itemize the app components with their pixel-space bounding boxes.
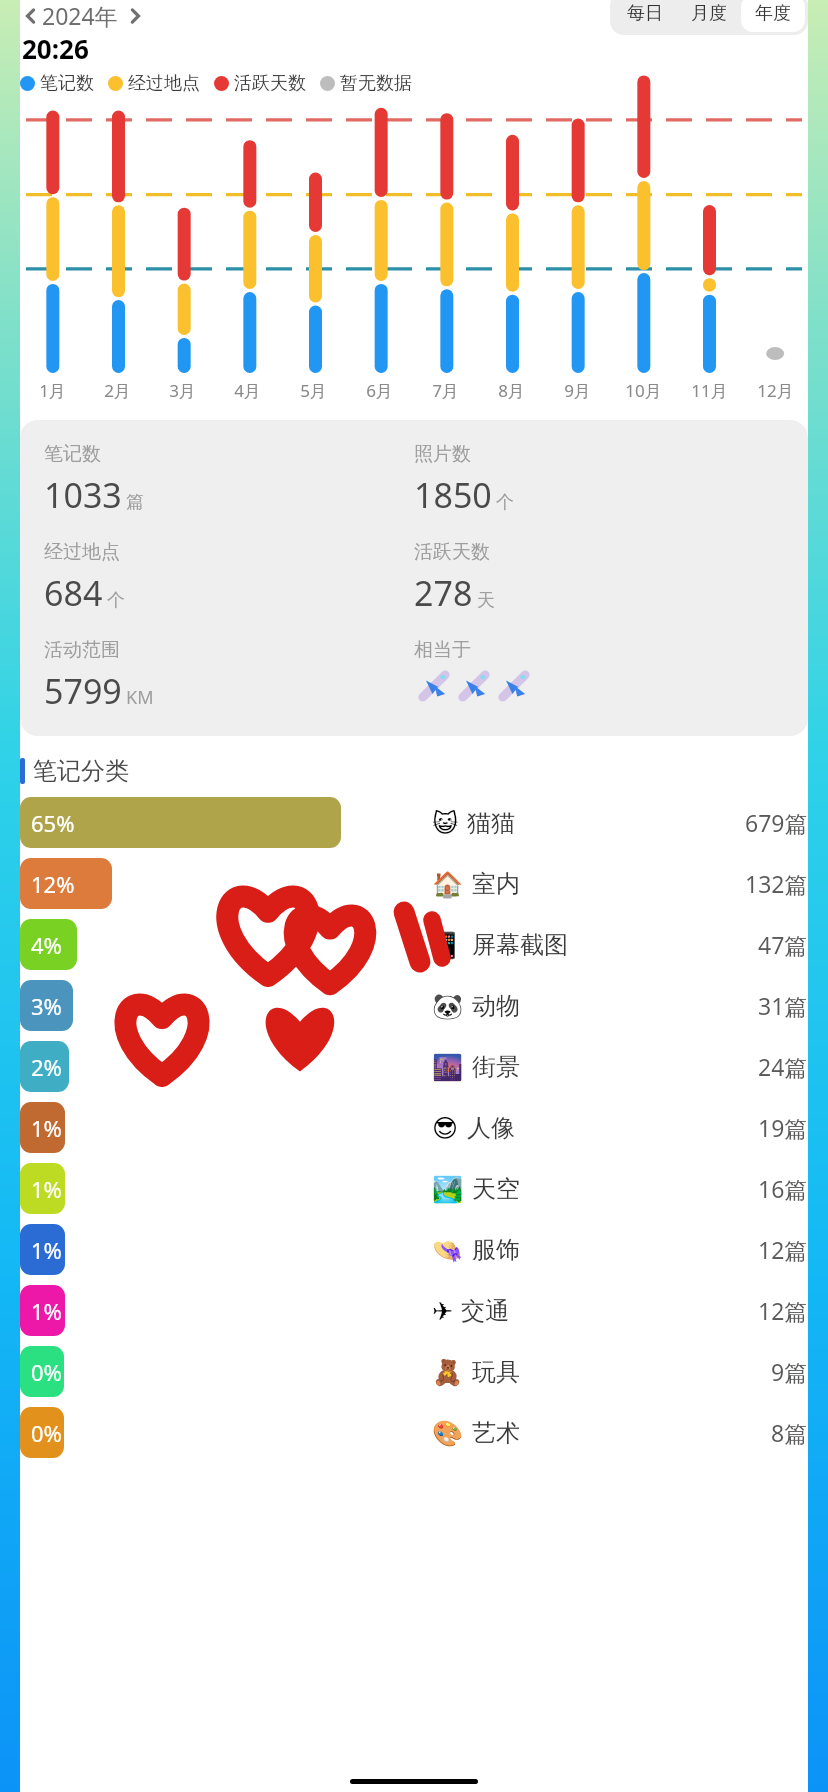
button[interactable]: 笔记数 — [20, 420, 808, 736]
staticText: 12月 — [757, 379, 794, 402]
staticText: 19篇 — [758, 1112, 808, 1143]
button[interactable]: 1% — [20, 1158, 808, 1219]
staticText: 12篇 — [758, 1234, 808, 1265]
staticText: 📱 — [432, 931, 464, 960]
staticText: 2024年 — [42, 0, 118, 31]
staticText: 6月 — [366, 379, 393, 402]
staticText: 11月 — [691, 379, 728, 402]
staticText: ✈ — [432, 1297, 453, 1326]
button[interactable]: 4% — [20, 914, 808, 975]
staticText: KM — [126, 685, 154, 710]
staticText: 5月 — [300, 379, 327, 402]
staticText: 10月 — [625, 379, 662, 402]
staticText: 1% — [31, 1174, 62, 1204]
staticText: 笔记数 — [40, 72, 94, 95]
staticText: 132篇 — [745, 868, 808, 899]
staticText: 278 — [414, 570, 473, 616]
button[interactable]: 月度 — [677, 0, 741, 32]
button[interactable]: 2% — [20, 1036, 808, 1097]
staticText: 猫猫 — [467, 808, 515, 838]
staticText: 天 — [477, 589, 495, 612]
staticText: 😎 — [432, 1114, 459, 1143]
staticText: 16篇 — [758, 1173, 808, 1204]
staticText: 相当于 — [414, 638, 471, 662]
staticText: 7月 — [432, 379, 459, 402]
button[interactable]: 0% — [20, 1341, 808, 1402]
staticText: 2% — [31, 1052, 62, 1082]
staticText: 服饰 — [472, 1235, 520, 1265]
staticText: 31篇 — [758, 990, 808, 1021]
staticText: 街景 — [472, 1052, 520, 1082]
staticText: 经过地点 — [128, 72, 200, 95]
staticText: 9月 — [564, 379, 591, 402]
staticText: 0% — [31, 1418, 62, 1448]
staticText: 🏠 — [432, 870, 464, 899]
staticText: 活跃天数 — [234, 72, 306, 95]
staticText: 屏幕截图 — [472, 930, 568, 960]
staticText: 经过地点 — [44, 540, 120, 564]
staticText: 1月 — [39, 379, 66, 402]
staticText: 月度 — [691, 2, 727, 25]
button[interactable]: 1% — [20, 1219, 808, 1280]
staticText: 艺术 — [472, 1418, 520, 1448]
staticText: 1% — [31, 1113, 62, 1143]
staticText: 1033 — [44, 472, 122, 518]
button[interactable]: 1% — [20, 1280, 808, 1341]
staticText: 👒 — [432, 1236, 464, 1265]
staticText: 🏞 — [432, 1175, 464, 1204]
staticText: 2月 — [104, 379, 131, 402]
staticText: 3% — [31, 991, 62, 1021]
staticText: 🧸 — [432, 1358, 464, 1387]
staticText: 47篇 — [758, 929, 808, 960]
staticText: 个 — [107, 589, 125, 612]
staticText: 1% — [31, 1235, 62, 1265]
staticText: 🐼 — [432, 992, 464, 1021]
button[interactable]: 1% — [20, 1097, 808, 1158]
staticText: 笔记分类 — [33, 756, 129, 786]
staticText: 照片数 — [414, 442, 471, 466]
staticText: 4月 — [234, 379, 261, 402]
staticText: 3月 — [169, 379, 196, 402]
staticText: 9篇 — [771, 1356, 808, 1387]
staticText: 室内 — [472, 869, 520, 899]
button[interactable]: 3% — [20, 975, 808, 1036]
button[interactable]: 年度 — [741, 0, 805, 32]
staticText: 每日 — [627, 2, 663, 25]
staticText: 玩具 — [472, 1357, 520, 1387]
staticText: 4% — [31, 930, 62, 960]
staticText: 交通 — [461, 1296, 509, 1326]
button[interactable]: 上一年 — [20, 5, 42, 27]
button[interactable]: 下一年 — [124, 5, 146, 27]
staticText: 笔记数 — [44, 442, 101, 466]
staticText: 人像 — [467, 1113, 515, 1143]
staticText: 684 — [44, 570, 103, 616]
staticText: 活动范围 — [44, 638, 120, 662]
staticText: 65% — [31, 808, 75, 838]
staticText: 年度 — [755, 2, 791, 25]
staticText: 😺 — [432, 809, 459, 838]
staticText: 20:26 — [22, 31, 89, 64]
staticText: 8篇 — [771, 1417, 808, 1448]
staticText: 篇 — [126, 491, 144, 514]
staticText: 动物 — [472, 991, 520, 1021]
staticText: 8月 — [498, 379, 525, 402]
staticText: 天空 — [472, 1174, 520, 1204]
staticText: 12篇 — [758, 1295, 808, 1326]
button[interactable]: 0% — [20, 1402, 808, 1463]
staticText: 679篇 — [745, 807, 808, 838]
staticText: 1% — [31, 1296, 62, 1326]
button[interactable]: 12% — [20, 853, 808, 914]
button[interactable]: 65% — [20, 792, 808, 853]
staticText: 24篇 — [758, 1051, 808, 1082]
staticText: 🌆 — [432, 1053, 464, 1082]
staticText: 个 — [496, 491, 514, 514]
staticText: 1850 — [414, 472, 492, 518]
staticText: 暂无数据 — [340, 72, 412, 95]
staticText: 🎨 — [432, 1419, 464, 1448]
staticText: 0% — [31, 1357, 62, 1387]
staticText: 12% — [31, 869, 75, 899]
button[interactable]: 每日 — [613, 0, 677, 32]
staticText: 5799 — [44, 668, 122, 714]
staticText: 活跃天数 — [414, 540, 490, 564]
